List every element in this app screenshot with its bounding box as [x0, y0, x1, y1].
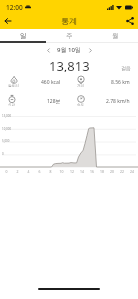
staticText: 5,000 — [2, 139, 10, 143]
staticText: 128분 — [47, 98, 61, 105]
staticText: 22 — [117, 169, 127, 174]
button[interactable]: 월 — [92, 29, 138, 43]
staticText: 16 — [87, 169, 97, 174]
button[interactable]: 속도 — [69, 92, 138, 111]
staticText: 9월 10일 — [57, 46, 81, 54]
staticText: 6 — [34, 169, 45, 174]
staticText: 속도 — [77, 103, 85, 108]
staticText: 8.56 km — [111, 79, 130, 86]
button[interactable]: 주 — [46, 29, 92, 43]
staticText: 칼로리 — [8, 84, 19, 89]
staticText: 0 — [1, 169, 12, 174]
staticText: 20 — [107, 169, 117, 174]
staticText: 4 — [23, 169, 34, 174]
staticText: 10 — [56, 169, 67, 174]
staticText: 14 — [77, 169, 87, 174]
staticText: 18 — [97, 169, 107, 174]
staticText: 12 — [67, 169, 77, 174]
staticText: 일 — [20, 32, 27, 40]
staticText: 통계 — [61, 16, 77, 26]
staticText: 10,000 — [2, 127, 12, 131]
button[interactable]: 거리 — [69, 73, 138, 92]
button[interactable]: Previous day — [41, 43, 55, 57]
staticText: 시간 — [8, 103, 16, 108]
staticText: 15,000 — [2, 114, 12, 118]
button[interactable]: Share — [122, 14, 138, 28]
button[interactable]: Back — [0, 14, 16, 28]
staticText: 월 — [112, 32, 119, 40]
staticText: 거리 — [77, 84, 85, 89]
staticText: 24 — [127, 169, 137, 174]
button[interactable]: 시간 — [0, 92, 69, 111]
staticText: 0 — [2, 152, 4, 156]
button[interactable]: 일 — [0, 29, 46, 43]
staticText: 13,813 — [49, 57, 90, 72]
staticText: 주 — [66, 32, 73, 40]
button[interactable]: 칼로리 — [0, 73, 69, 92]
staticText: 2 — [12, 169, 23, 174]
staticText: 8 — [45, 169, 56, 174]
staticText: 460 kcal — [41, 79, 61, 86]
staticText: 걸음 — [121, 65, 131, 71]
staticText: 2.78 km/h — [106, 98, 130, 105]
staticText: 12:00 — [6, 3, 23, 12]
button[interactable]: Next day — [83, 43, 97, 57]
